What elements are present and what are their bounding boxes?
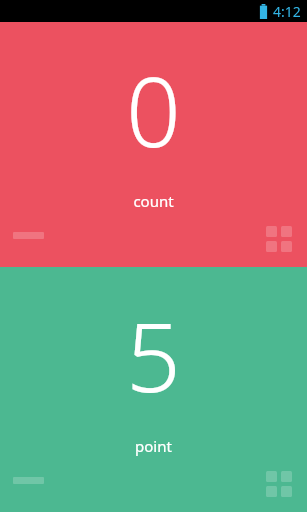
staticText: 5 bbox=[126, 289, 181, 420]
button[interactable]: Grid view bbox=[266, 226, 292, 252]
staticText: count bbox=[133, 191, 174, 211]
staticText: point bbox=[135, 436, 172, 456]
button[interactable]: Grid view bbox=[266, 471, 292, 497]
button[interactable]: 5 bbox=[0, 267, 307, 512]
staticText: 4:12 bbox=[273, 2, 301, 21]
other: Battery bbox=[259, 4, 268, 19]
staticText: 0 bbox=[126, 44, 181, 175]
button[interactable]: 0 bbox=[0, 22, 307, 267]
